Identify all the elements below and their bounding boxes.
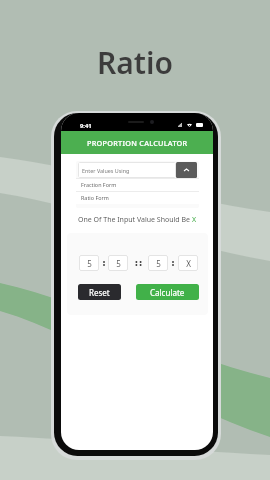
button[interactable]: 5 <box>108 255 128 271</box>
button[interactable]: Calculate <box>136 284 199 300</box>
button[interactable]: Ratio Form <box>76 191 199 204</box>
button[interactable]: 5 <box>148 255 168 271</box>
staticText: Enter Values Using <box>82 167 130 174</box>
other: Collapse dropdown <box>176 162 197 178</box>
staticText: Reset <box>89 287 110 298</box>
staticText: Ratio Form <box>81 194 109 201</box>
button[interactable]: Fraction Form <box>76 178 199 191</box>
button[interactable]: X <box>178 255 198 271</box>
button[interactable]: Enter Values Using <box>78 162 197 178</box>
staticText: 5 <box>87 258 92 269</box>
staticText: 5 <box>156 258 161 269</box>
staticText: One Of The Input Value Should Be <box>78 215 192 225</box>
staticText: 5 <box>116 258 121 269</box>
button[interactable]: Reset <box>78 284 121 300</box>
staticText: 9:41 <box>80 122 92 130</box>
staticText: Calculate <box>150 287 185 298</box>
staticText: X <box>186 258 191 269</box>
staticText: Fraction Form <box>81 181 117 188</box>
button[interactable]: 5 <box>79 255 99 271</box>
staticText: PROPORTION CALCULATOR <box>87 138 188 148</box>
staticText: X <box>192 215 197 225</box>
staticText: Ratio <box>97 42 174 83</box>
